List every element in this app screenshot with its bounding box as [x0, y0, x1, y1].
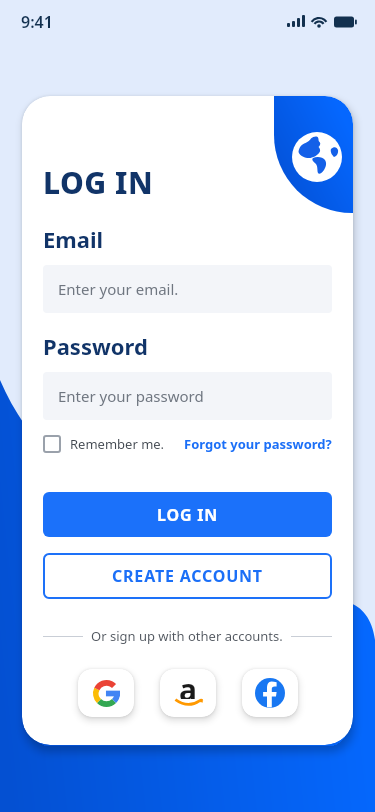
button[interactable]: Forgot your password? — [184, 435, 332, 453]
button[interactable]: a — [160, 669, 216, 717]
staticText: LOG IN — [43, 162, 154, 203]
staticText: Password — [43, 331, 148, 361]
staticText: Enter your password — [58, 386, 204, 406]
button[interactable] — [78, 669, 134, 717]
button[interactable]: Enter your password — [43, 372, 332, 420]
staticText: LOG IN — [157, 504, 219, 526]
staticText: Enter your email. — [58, 279, 179, 299]
button[interactable] — [43, 435, 61, 453]
button[interactable]: Enter your email. — [43, 265, 332, 313]
staticText: Email — [43, 224, 104, 254]
staticText: 9:41 — [21, 11, 53, 33]
button[interactable] — [274, 96, 353, 213]
button[interactable]: LOG IN — [43, 492, 332, 537]
button[interactable]: CREATE ACCOUNT — [43, 553, 332, 599]
staticText: Or sign up with other accounts. — [91, 627, 283, 645]
staticText: Remember me. — [70, 435, 165, 453]
staticText: a — [179, 669, 197, 699]
staticText: CREATE ACCOUNT — [112, 565, 263, 587]
button[interactable] — [242, 669, 298, 717]
